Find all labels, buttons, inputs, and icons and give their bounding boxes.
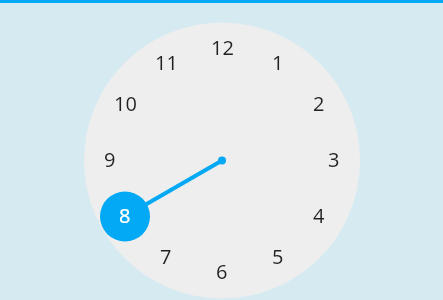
staticText: 10 (114, 90, 137, 117)
button[interactable]: 6 (197, 246, 247, 296)
staticText: 2 (313, 90, 325, 117)
staticText: 9 (104, 146, 116, 173)
button[interactable]: 4 (294, 190, 344, 240)
button[interactable]: 7 (141, 231, 191, 281)
staticText: 1 (272, 49, 284, 76)
button[interactable]: 12 (197, 22, 247, 72)
button[interactable]: 5 (253, 231, 303, 281)
button[interactable]: 2 (294, 78, 344, 128)
staticText: 5 (272, 243, 284, 270)
button[interactable]: 1 (253, 37, 303, 87)
staticText: 4 (313, 202, 325, 229)
button[interactable]: 8 (100, 190, 150, 240)
staticText: 7 (160, 243, 172, 270)
staticText: 12 (211, 34, 234, 61)
button[interactable]: 3 (309, 134, 359, 184)
button[interactable]: 11 (141, 37, 191, 87)
staticText: 3 (328, 146, 340, 173)
staticText: 11 (155, 49, 178, 76)
button[interactable]: 10 (100, 78, 150, 128)
button[interactable]: 9 (85, 134, 135, 184)
staticText: 8 (119, 202, 131, 229)
staticText: 6 (216, 258, 228, 285)
